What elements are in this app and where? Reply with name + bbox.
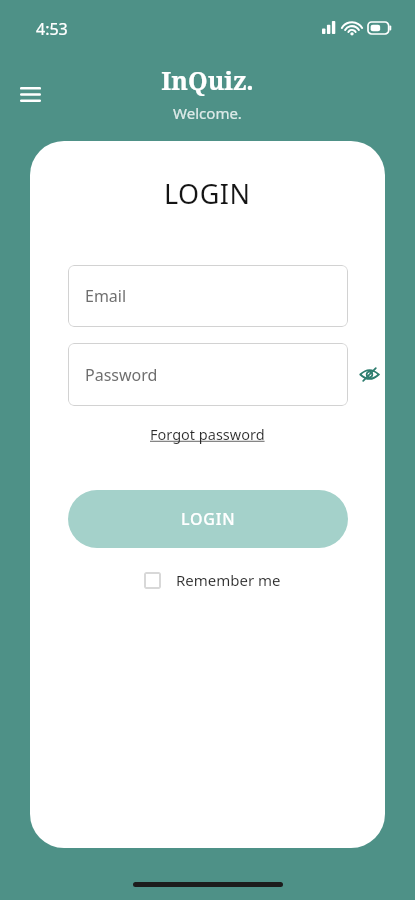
staticText: InQuiz. [161, 63, 254, 97]
staticText: LOGIN [164, 175, 251, 212]
button[interactable]: Password [68, 343, 348, 406]
staticText: Remember me [176, 570, 281, 590]
button[interactable]: Forgot password [146, 422, 269, 446]
staticText: Welcome. [173, 103, 242, 123]
button[interactable]: Menu [12, 76, 48, 112]
button[interactable]: Show password [354, 359, 384, 389]
staticText: Forgot password [150, 424, 265, 444]
staticText: 4:53 [36, 18, 68, 40]
button[interactable]: Email [68, 265, 348, 327]
button[interactable]: LOGIN [68, 490, 348, 548]
staticText: LOGIN [181, 508, 236, 530]
button[interactable]: Remember me [140, 566, 285, 594]
staticText: Email [85, 285, 127, 307]
staticText: Password [85, 364, 158, 386]
